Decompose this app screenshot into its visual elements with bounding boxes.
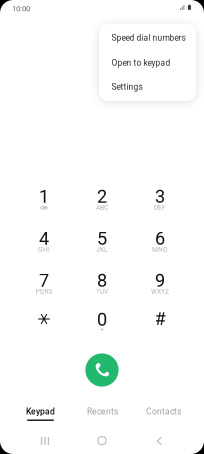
staticText: DEF (154, 204, 166, 211)
staticText: 6 (155, 228, 165, 249)
staticText: 1 (39, 186, 49, 207)
button[interactable]: Recents (72, 397, 133, 426)
staticText: 7 (39, 270, 49, 291)
button[interactable]: 0 (81, 298, 123, 340)
staticText: 8 (97, 270, 107, 291)
staticText: Contacts (146, 406, 181, 416)
button[interactable]: Back (131, 430, 187, 452)
staticText: Settings (111, 82, 142, 92)
button[interactable]: Recent apps (17, 430, 73, 452)
staticText: 5 (97, 228, 107, 249)
staticText: 2 (97, 186, 107, 207)
button[interactable]: # (139, 298, 181, 340)
button[interactable]: 7 (23, 259, 65, 301)
button[interactable]: Speed dial numbers (99, 26, 196, 50)
button[interactable]: 9 (139, 259, 181, 301)
staticText: MNO (152, 246, 168, 253)
button[interactable]: 3 (139, 175, 181, 217)
staticText: Open to keypad (111, 58, 170, 68)
staticText: + (100, 326, 104, 333)
staticText: Speed dial numbers (111, 33, 185, 43)
button[interactable]: 6 (139, 217, 181, 259)
button[interactable]: Contacts (133, 397, 194, 426)
staticText: 3 (155, 186, 165, 207)
staticText: GHI (38, 246, 50, 253)
button[interactable]: 4 (23, 217, 65, 259)
staticText: Recents (87, 406, 118, 416)
button[interactable]: Call (80, 348, 124, 392)
staticText: ABC (96, 204, 108, 211)
staticText: # (154, 308, 165, 330)
staticText: WXYZ (151, 288, 169, 295)
staticText: 9 (155, 270, 165, 291)
button[interactable]: Settings (99, 75, 196, 99)
button[interactable]: 1 (23, 175, 65, 217)
button[interactable]: Open to keypad (99, 51, 196, 75)
staticText: TUV (96, 288, 108, 295)
button[interactable]: 8 (81, 259, 123, 301)
staticText: Keypad (26, 406, 55, 416)
staticText: 0 (97, 309, 107, 330)
button[interactable]: Home (74, 430, 130, 452)
button[interactable]: Star (23, 298, 65, 340)
staticText: 4 (39, 228, 49, 249)
button[interactable]: 5 (81, 217, 123, 259)
staticText: 10:00 (12, 4, 30, 13)
button[interactable]: 2 (81, 175, 123, 217)
staticText: PQRS (35, 288, 52, 295)
button[interactable]: Keypad (10, 397, 71, 426)
staticText: JKL (96, 246, 108, 253)
